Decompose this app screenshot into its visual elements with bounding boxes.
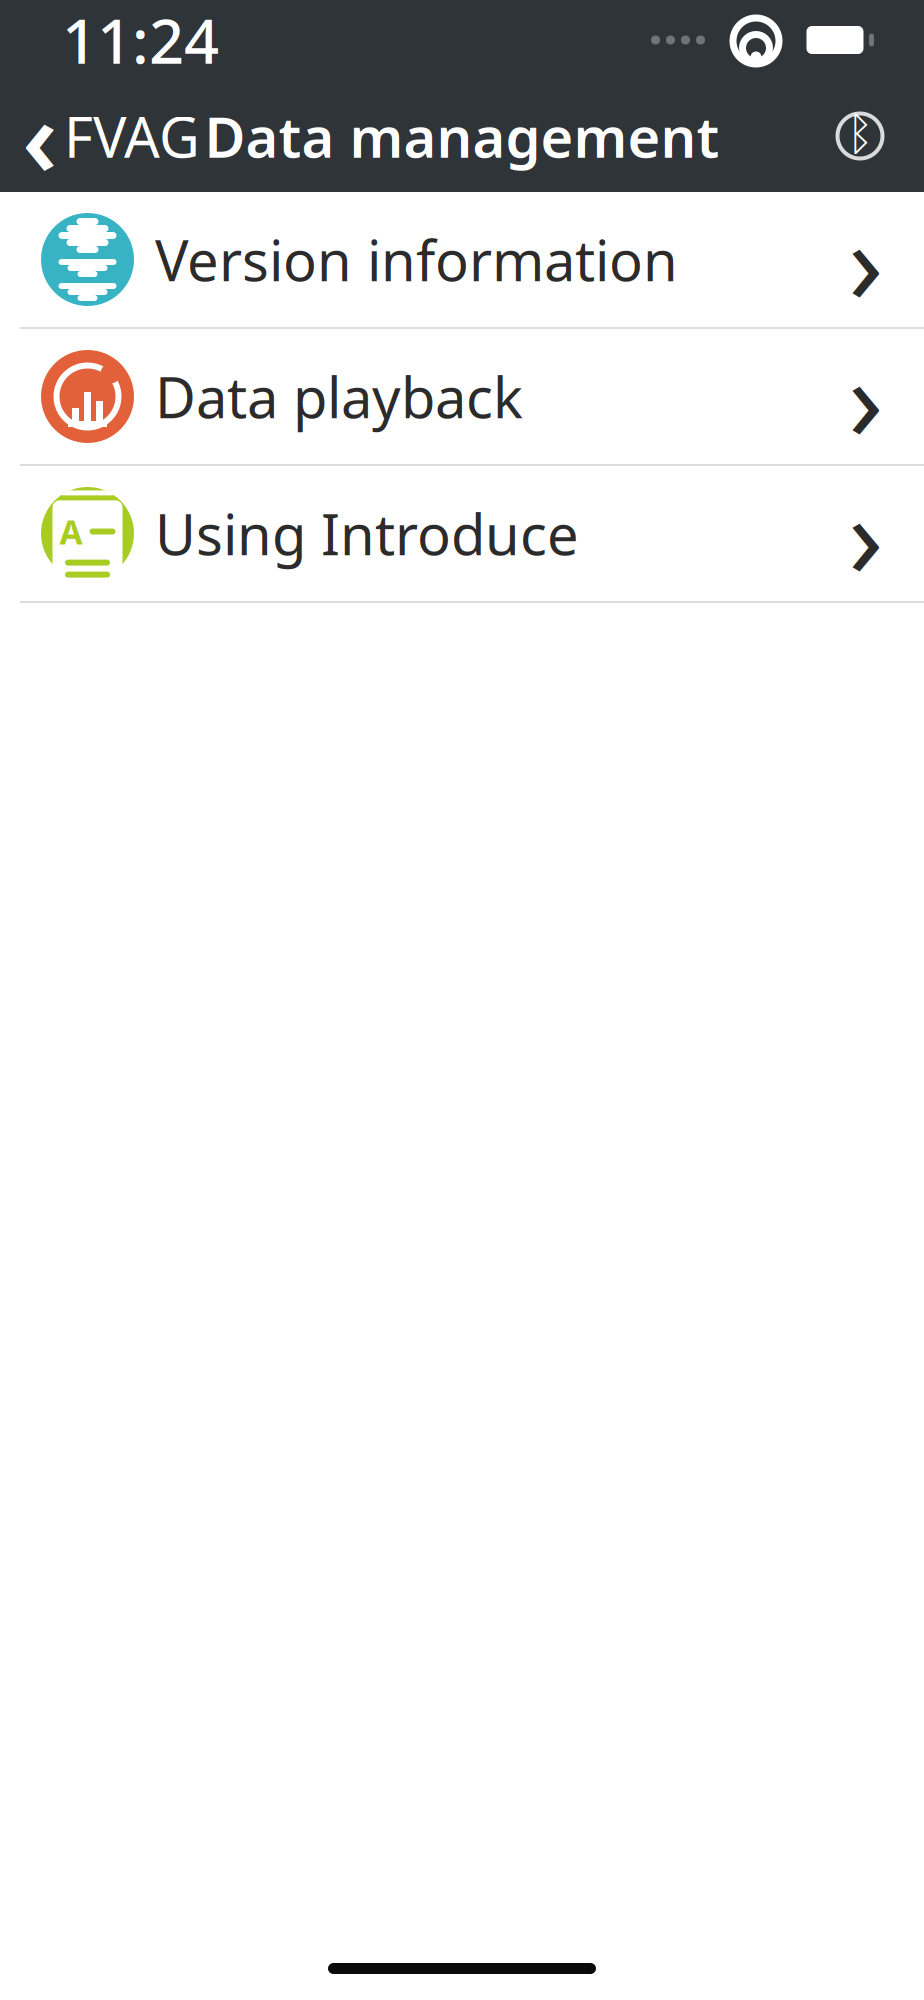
staticText: Data playback	[155, 359, 523, 434]
staticText: ›	[848, 457, 884, 610]
staticText: ›	[848, 320, 884, 473]
button[interactable]: A	[0, 466, 924, 601]
staticText: Using Introduce	[155, 496, 579, 571]
staticText: Version information	[155, 222, 678, 297]
staticText: ›	[848, 183, 884, 336]
staticText: 11:24	[62, 0, 219, 81]
button[interactable]: ‹	[0, 80, 216, 192]
staticText: ᛒ	[846, 114, 873, 158]
staticText: A	[59, 509, 82, 554]
staticText: FVAG	[64, 99, 200, 173]
staticText: Data management	[204, 99, 719, 173]
button[interactable]: Bluetooth	[834, 80, 924, 192]
staticText: ‹	[22, 67, 58, 205]
button[interactable]: Version information	[0, 192, 924, 327]
button[interactable]: Data playback	[0, 329, 924, 464]
